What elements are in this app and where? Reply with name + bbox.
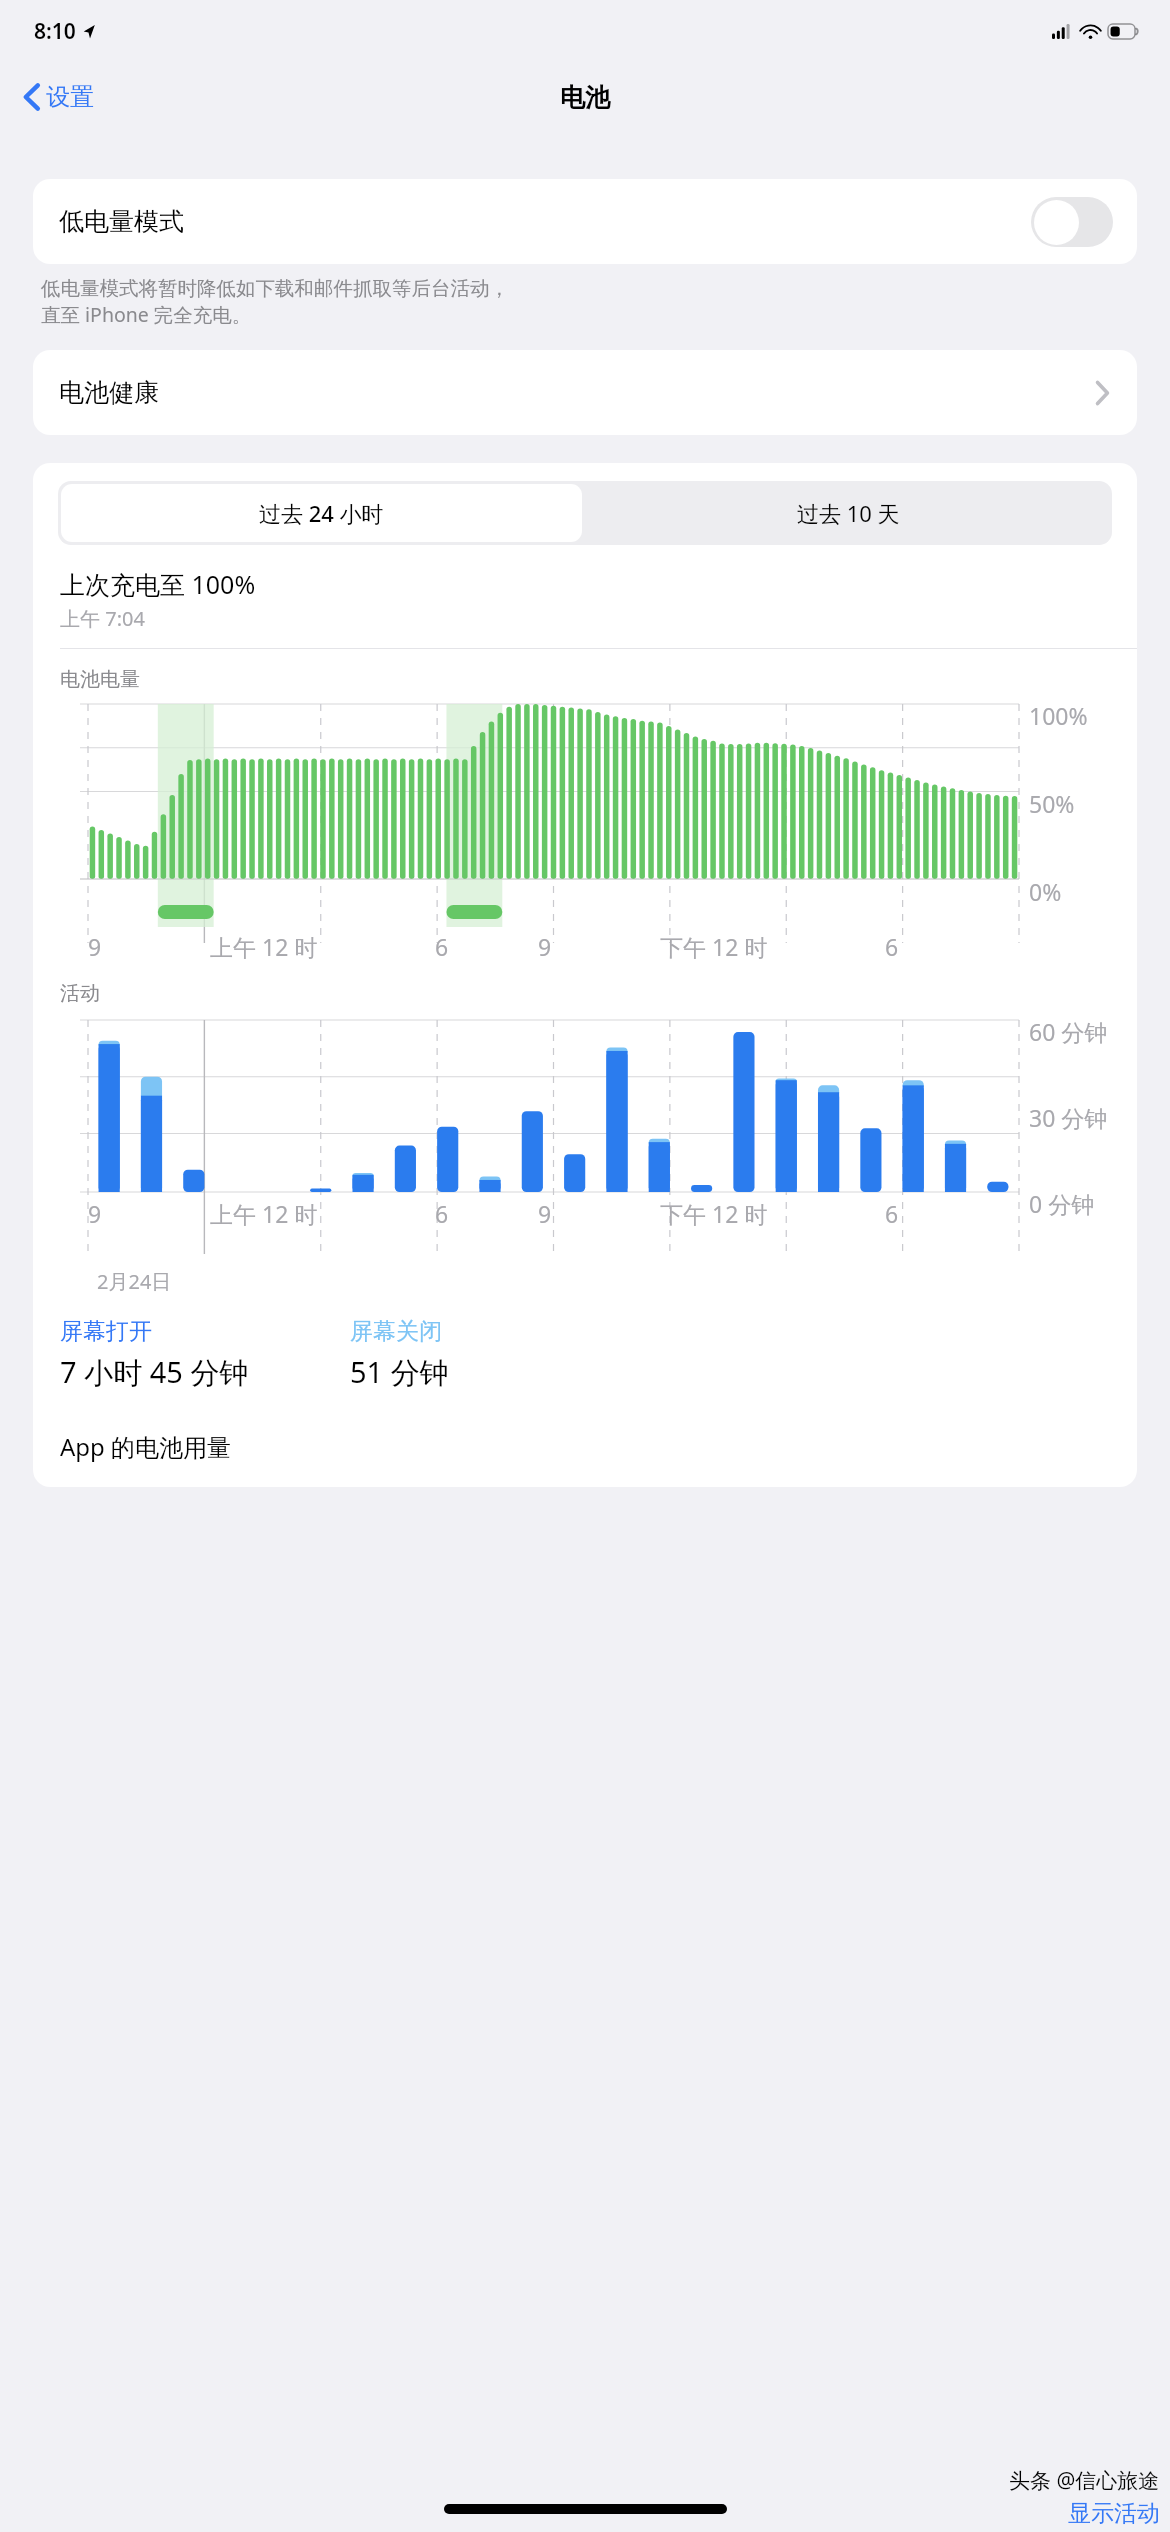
button[interactable]: 显示活动 [1068, 2499, 1160, 2528]
staticText: 50% [1029, 788, 1075, 819]
staticText: 9 [88, 931, 102, 962]
staticText: 过去 10 天 [797, 498, 900, 528]
staticText: 9 [538, 931, 552, 962]
staticText: App 的电池用量 [60, 1430, 232, 1463]
staticText: 0 分钟 [1029, 1188, 1095, 1219]
staticText: 电池电量 [60, 667, 140, 692]
staticText: 6 [885, 1198, 899, 1229]
staticText: 低电量模式将暂时降低如下载和邮件抓取等后台活动， [41, 276, 509, 301]
staticText: 60 分钟 [1029, 1016, 1108, 1047]
button[interactable]: 设置 [18, 76, 100, 118]
staticText: 直至 iPhone 完全充电。 [41, 301, 252, 328]
staticText: 下午 12 时 [660, 1198, 768, 1229]
button[interactable]: 过去 24 小时 [61, 484, 582, 542]
button[interactable]: 屏幕打开 [60, 1317, 152, 1346]
button[interactable]: 电池健康 [33, 350, 1137, 435]
staticText: 51 分钟 [350, 1352, 449, 1392]
staticText: 上午 12 时 [210, 931, 318, 962]
staticText: 上午 12 时 [210, 1198, 318, 1229]
staticText: 上午 7:04 [60, 605, 145, 632]
staticText: 6 [435, 931, 449, 962]
staticText: 下午 12 时 [660, 931, 768, 962]
staticText: 9 [538, 1198, 552, 1229]
staticText: 0% [1029, 876, 1062, 907]
staticText: 8:10 [34, 17, 76, 46]
staticText: 6 [435, 1198, 449, 1229]
button[interactable]: 屏幕关闭 [350, 1317, 442, 1346]
staticText: 活动 [60, 981, 100, 1006]
staticText: 头条 @信心旅途 [1009, 2466, 1160, 2495]
staticText: 设置 [46, 82, 94, 112]
staticText: 电池健康 [59, 377, 159, 408]
button[interactable]: 过去 10 天 [585, 481, 1112, 545]
staticText: 上次充电至 100% [60, 567, 256, 601]
button[interactable]: 低电量模式 [33, 179, 1137, 264]
button[interactable]: 低电量模式开关 [1031, 197, 1113, 247]
staticText: 过去 24 小时 [259, 498, 384, 528]
staticText: 低电量模式 [59, 206, 184, 237]
staticText: 30 分钟 [1029, 1102, 1108, 1133]
staticText: 电池 [560, 82, 610, 113]
staticText: 6 [885, 931, 899, 962]
staticText: 2月24日 [97, 1268, 172, 1295]
staticText: 9 [88, 1198, 102, 1229]
staticText: 100% [1029, 700, 1088, 731]
staticText: 7 小时 45 分钟 [60, 1352, 249, 1392]
